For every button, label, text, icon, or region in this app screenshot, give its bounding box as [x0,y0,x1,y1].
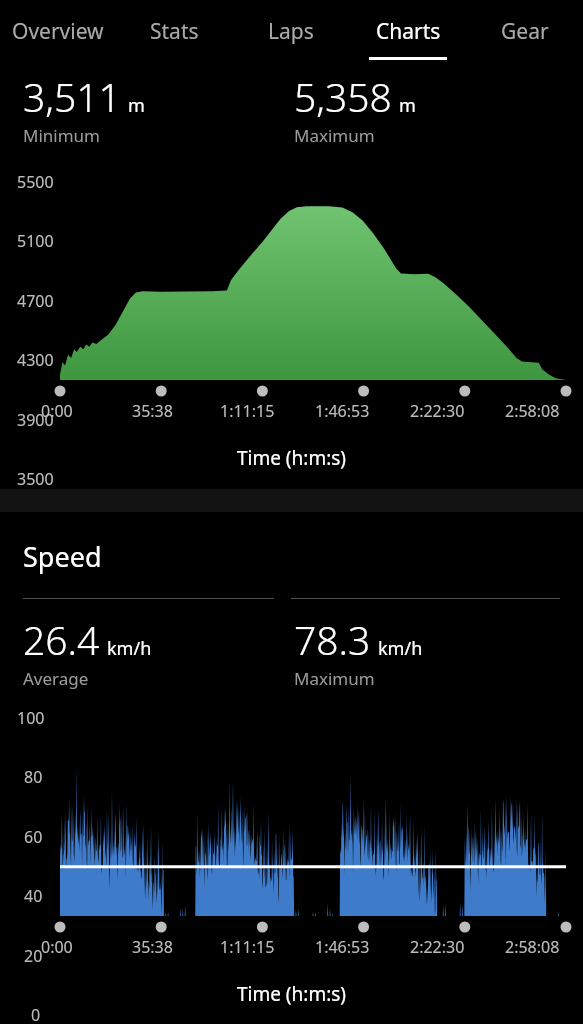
staticText: 4300 [17,349,54,371]
staticText: Gear [501,17,549,46]
staticText: 26.4 [23,613,100,666]
button[interactable]: Gear [466,0,583,68]
staticText: 5100 [17,230,54,252]
staticText: Time (h:m:s) [0,981,583,1007]
staticText: m [399,93,416,118]
staticText: m [128,93,145,118]
staticText: 4700 [17,290,54,312]
staticText: 1:46:53 [315,400,370,422]
staticText: 1:46:53 [315,936,370,958]
staticText: 40 [24,885,43,907]
staticText: Average [23,667,89,690]
button[interactable]: 26.4 [23,613,291,690]
button[interactable]: 5,358 [294,70,583,147]
staticText: Stats [150,17,199,46]
staticText: Laps [268,17,314,46]
staticText: Maximum [294,667,375,690]
staticText: 20 [24,945,43,967]
button[interactable]: Overview [0,0,116,68]
button[interactable]: Stats [116,0,232,68]
staticText: 78.3 [294,613,371,666]
staticText: km/h [107,636,152,661]
staticText: 35:38 [132,936,173,958]
staticText: Time (h:m:s) [0,445,583,471]
staticText: 2:58:08 [505,400,560,422]
button[interactable]: 78.3 [294,613,583,690]
staticText: 3500 [17,468,54,490]
staticText: Minimum [23,124,100,147]
staticText: Speed [23,538,102,575]
staticText: 3,511 [23,70,121,123]
staticText: 1:11:15 [220,936,275,958]
staticText: 35:38 [132,400,173,422]
button[interactable]: Laps [232,0,349,68]
staticText: km/h [378,636,423,661]
staticText: 1:11:15 [220,400,275,422]
staticText: 100 [17,707,45,729]
button[interactable]: 3,511 [23,70,291,147]
staticText: 0:00 [41,936,73,958]
staticText: Maximum [294,124,375,147]
staticText: 3900 [17,409,54,431]
staticText: Charts [376,17,441,46]
staticText: 0 [31,1004,41,1024]
staticText: 2:58:08 [505,936,560,958]
staticText: Overview [12,17,104,46]
staticText: 2:22:30 [410,400,465,422]
staticText: 5500 [17,171,54,193]
staticText: 5,358 [294,70,392,123]
staticText: 80 [24,766,43,788]
staticText: 2:22:30 [410,936,465,958]
staticText: 0:00 [41,400,73,422]
staticText: 60 [24,826,43,848]
button[interactable]: Charts [349,0,466,68]
